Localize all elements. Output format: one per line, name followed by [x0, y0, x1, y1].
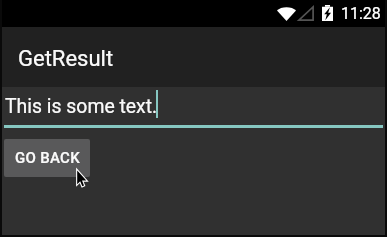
other: Battery charging: [322, 5, 333, 21]
other: Mobile signal: [298, 6, 314, 21]
button[interactable]: GO BACK: [4, 139, 90, 177]
button[interactable]: This is some text.: [4, 90, 383, 128]
staticText: This is some text.: [5, 95, 158, 118]
other: Wi-Fi signal: [277, 6, 296, 21]
staticText: GO BACK: [15, 149, 80, 167]
staticText: 11:28: [341, 4, 381, 23]
staticText: GetResult: [18, 46, 114, 72]
